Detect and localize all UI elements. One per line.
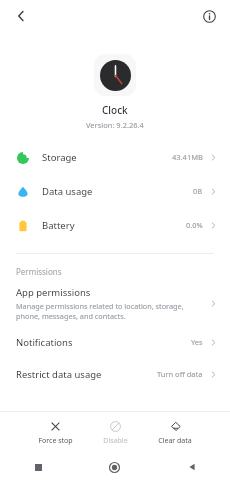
button[interactable]: Recent apps (0, 454, 76, 480)
staticText: Permissions (16, 266, 62, 277)
staticText: Yes (191, 337, 203, 347)
button[interactable]: Restrict data usage (0, 359, 230, 389)
button[interactable]: Storage (0, 140, 230, 174)
staticText: Data usage (42, 185, 93, 198)
staticText: Storage (42, 151, 77, 164)
button[interactable]: App info (194, 1, 224, 31)
button[interactable]: Home (76, 454, 153, 480)
button[interactable]: Data usage (0, 174, 230, 208)
staticText: Turn off data (157, 369, 203, 379)
staticText: Disable (103, 436, 128, 446)
button[interactable]: Disable (101, 418, 130, 448)
button[interactable]: Battery (0, 208, 230, 242)
button[interactable]: Notifications (0, 327, 230, 357)
staticText: 0B (193, 186, 203, 196)
button[interactable]: Force stop (36, 418, 75, 448)
staticText: Clock (102, 103, 128, 117)
staticText: Clear data (158, 436, 192, 446)
staticText: Manage permissions related to location, … (16, 301, 184, 321)
staticText: Notifications (16, 336, 73, 349)
staticText: Force stop (38, 436, 73, 446)
button[interactable]: Back (6, 1, 36, 31)
staticText: Battery (42, 219, 75, 232)
staticText: App permissions (16, 286, 91, 299)
staticText: Restrict data usage (16, 368, 102, 381)
button[interactable]: Clear data (156, 418, 194, 448)
button[interactable]: Back (153, 454, 230, 480)
staticText: 43.41MB (172, 152, 203, 162)
button[interactable]: App permissions (0, 284, 230, 323)
staticText: Version: 9.2.26.4 (86, 120, 144, 130)
staticText: 0.0% (186, 220, 203, 230)
